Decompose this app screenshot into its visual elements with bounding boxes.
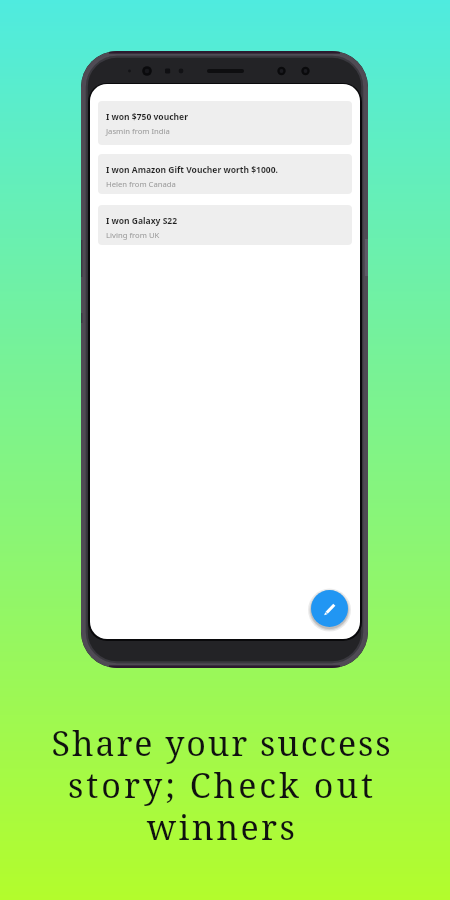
staticText: winners xyxy=(12,804,432,850)
button[interactable]: I won $750 voucher xyxy=(98,101,352,145)
staticText: Jasmin from India xyxy=(106,126,170,136)
staticText: story; Check out xyxy=(12,762,432,808)
staticText: Living from UK xyxy=(106,230,160,240)
staticText: I won Galaxy S22 xyxy=(106,215,178,227)
staticText: I won $750 voucher xyxy=(106,111,188,123)
staticText: Share your success xyxy=(12,720,432,766)
button[interactable]: Write a post xyxy=(311,590,348,627)
button[interactable]: I won Galaxy S22 xyxy=(98,205,352,245)
staticText: Helen from Canada xyxy=(106,179,176,189)
button[interactable]: I won Amazon Gift Voucher worth $1000. xyxy=(98,154,352,194)
staticText: I won Amazon Gift Voucher worth $1000. xyxy=(106,164,278,176)
